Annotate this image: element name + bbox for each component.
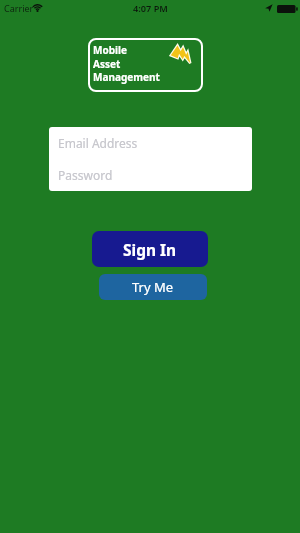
button[interactable]: Sign In	[92, 231, 208, 267]
staticText: Email Address	[58, 135, 138, 151]
staticText: Password	[58, 167, 113, 183]
button[interactable]: Password	[49, 159, 252, 191]
staticText: Mobile Asset Management	[93, 43, 160, 84]
staticText: Try Me	[132, 278, 174, 296]
button[interactable]: Mobile Asset Management	[88, 38, 203, 92]
staticText: Sign In	[123, 239, 177, 260]
staticText: Carrier	[4, 2, 34, 14]
button[interactable]: Email Address	[49, 127, 252, 159]
staticText: 4:07 PM	[133, 2, 168, 15]
button[interactable]: Try Me	[99, 274, 207, 300]
